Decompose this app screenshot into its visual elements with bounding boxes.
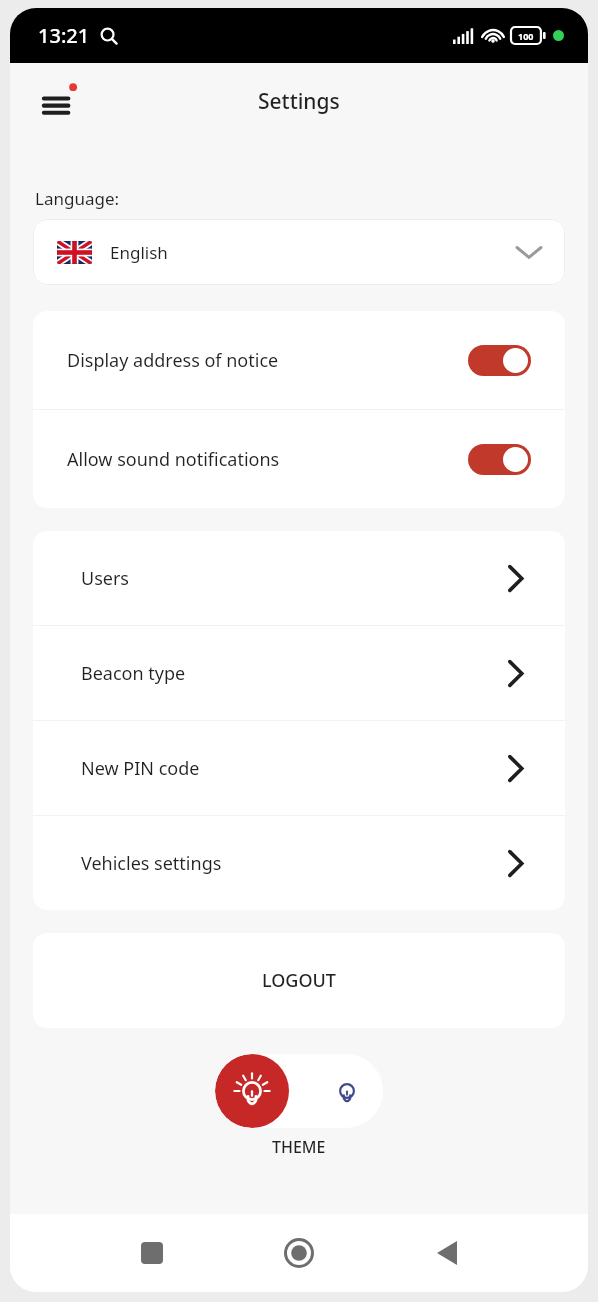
- staticText: 13:21: [38, 22, 90, 49]
- staticText: New PIN code: [81, 756, 200, 781]
- button[interactable]: Theme: [215, 1054, 383, 1128]
- button[interactable]: Menu: [40, 78, 86, 124]
- staticText: Display address of notice: [67, 348, 279, 373]
- button[interactable]: LOGOUT: [33, 933, 565, 1028]
- button[interactable]: Home: [273, 1227, 325, 1279]
- button[interactable]: Beacon type: [33, 626, 565, 720]
- button[interactable]: New PIN code: [33, 721, 565, 815]
- staticText: Allow sound notifications: [67, 447, 280, 472]
- button[interactable]: Back: [421, 1227, 473, 1279]
- staticText: 100: [518, 30, 534, 42]
- button[interactable]: English: [33, 219, 565, 285]
- button[interactable]: Recent apps: [126, 1227, 178, 1279]
- staticText: THEME: [272, 1136, 326, 1158]
- button[interactable]: Allow sound notifications: [33, 410, 565, 508]
- staticText: English: [110, 241, 168, 264]
- staticText: LOGOUT: [262, 968, 336, 993]
- button[interactable]: Display address of notice: [33, 311, 565, 409]
- staticText: Beacon type: [81, 661, 186, 686]
- button[interactable]: Users: [33, 531, 565, 625]
- staticText: Vehicles settings: [81, 851, 222, 876]
- staticText: Settings: [258, 87, 340, 116]
- staticText: Users: [81, 566, 129, 591]
- button[interactable]: Vehicles settings: [33, 816, 565, 910]
- staticText: Language:: [35, 187, 120, 210]
